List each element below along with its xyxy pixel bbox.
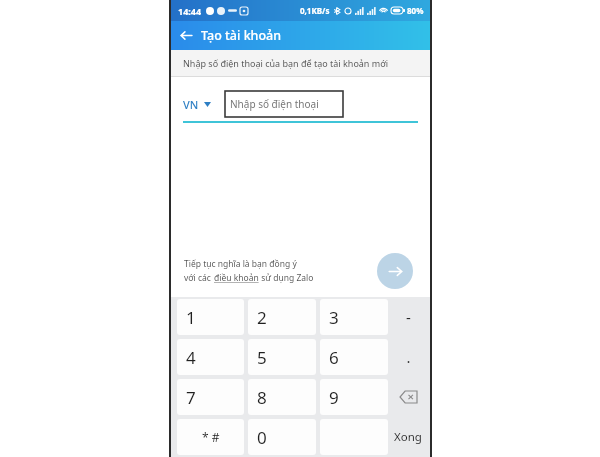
- staticText: Nhập số điện thoại: [230, 97, 319, 111]
- staticText: 9: [329, 386, 339, 409]
- staticText: Nhập số điện thoại của bạn để tạo tài kh…: [183, 57, 389, 69]
- button[interactable]: điều khoản: [214, 272, 259, 284]
- staticText: 0,1KB/s: [300, 5, 330, 16]
- staticText: Tạo tài khoản: [201, 27, 282, 44]
- staticText: với các: [184, 272, 214, 284]
- button[interactable]: VN: [183, 97, 211, 112]
- staticText: 2: [257, 306, 267, 329]
- button[interactable]: Continue: [377, 253, 413, 289]
- button[interactable]: 4: [177, 339, 244, 375]
- staticText: 5: [257, 346, 267, 369]
- staticText: -: [406, 307, 411, 327]
- button[interactable]: .: [390, 337, 426, 377]
- staticText: 4: [186, 346, 196, 369]
- staticText: Tiếp tục nghĩa là bạn đồng ý: [184, 258, 297, 270]
- button[interactable]: 1: [177, 299, 244, 335]
- button[interactable]: 0: [248, 419, 316, 455]
- staticText: 80%: [407, 5, 424, 16]
- button[interactable]: 6: [320, 339, 388, 375]
- staticText: * #: [202, 429, 220, 445]
- button[interactable]: Nhập số điện thoại: [225, 91, 343, 117]
- button[interactable]: -: [390, 297, 426, 337]
- button[interactable]: 8: [248, 379, 316, 415]
- staticText: 6: [329, 346, 339, 369]
- button[interactable]: 7: [177, 379, 244, 415]
- button[interactable]: * #: [177, 419, 244, 455]
- staticText: 7: [186, 386, 196, 409]
- button[interactable]: 2: [248, 299, 316, 335]
- button[interactable]: Back: [171, 21, 201, 50]
- button[interactable]: Xong: [390, 417, 426, 457]
- button[interactable]: 5: [248, 339, 316, 375]
- staticText: 14:44: [178, 5, 202, 17]
- staticText: 8: [257, 386, 267, 409]
- staticText: sử dụng Zalo: [259, 272, 314, 284]
- button[interactable]: Backspace: [390, 377, 426, 417]
- staticText: .: [406, 347, 411, 367]
- staticText: VN: [183, 97, 199, 112]
- staticText: Xong: [394, 429, 422, 445]
- staticText: 0: [257, 426, 267, 449]
- button[interactable]: 3: [320, 299, 388, 335]
- button[interactable]: 9: [320, 379, 388, 415]
- staticText: 1: [186, 306, 196, 329]
- staticText: 3: [329, 306, 339, 329]
